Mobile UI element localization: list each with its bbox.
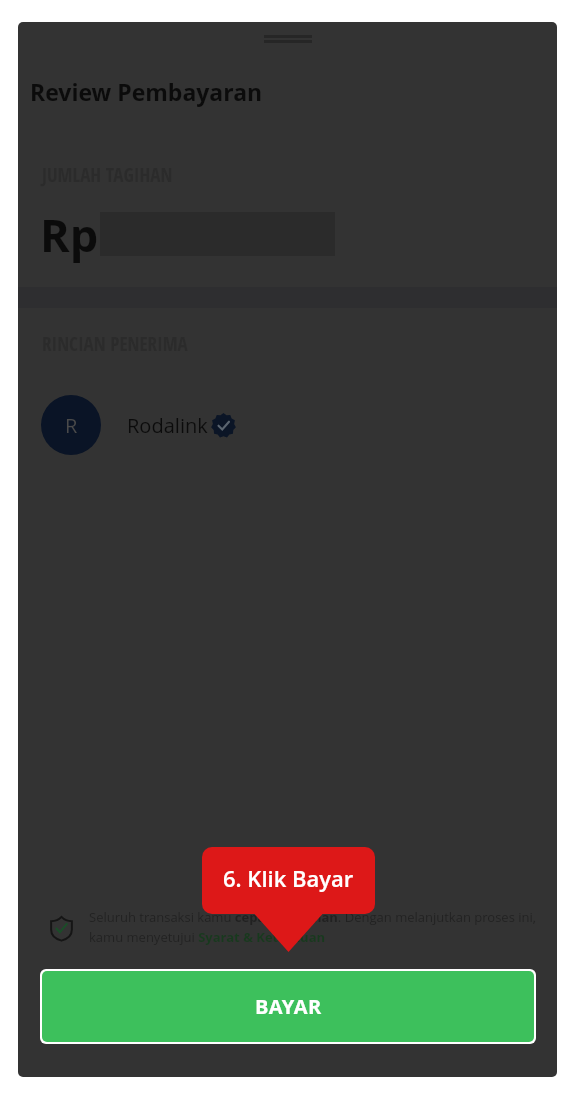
staticText: Rodalink (127, 412, 208, 439)
staticText: JUMLAH TAGIHAN (42, 162, 173, 188)
button[interactable]: R (41, 395, 236, 455)
staticText: BAYAR (255, 993, 322, 1020)
staticText: Rp (40, 204, 99, 265)
staticText: Seluruh transaksi kamu cepat dan aman. D… (89, 908, 557, 946)
other: Verified account (211, 413, 236, 438)
button[interactable]: BAYAR (42, 971, 534, 1042)
staticText: Review Pembayaran (30, 76, 263, 107)
staticText: R (65, 412, 78, 439)
staticText: RINCIAN PENERIMA (42, 331, 188, 357)
staticText: 6. Klik Bayar (223, 863, 354, 893)
